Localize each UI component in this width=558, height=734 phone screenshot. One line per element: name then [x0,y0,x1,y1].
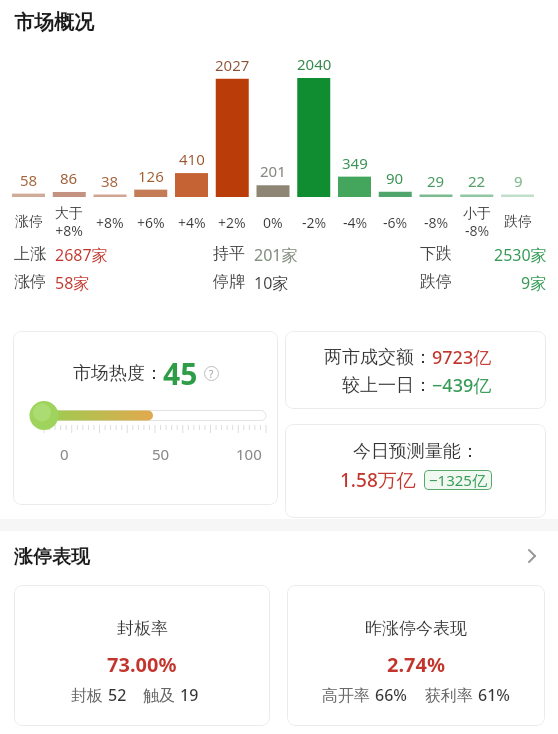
staticText: 下跌 [420,244,452,264]
staticText: +6% [137,213,165,232]
staticText: 封板率 [117,618,168,639]
staticText: 持平 [213,244,245,264]
staticText: 今日预测量能： [353,440,479,463]
staticText: 349 [342,153,368,173]
button[interactable]: 市场热度： [13,331,278,505]
staticText: 2530家 [494,244,547,266]
staticText: 58 [20,170,38,190]
staticText: 市场热度： [73,362,163,385]
staticText: 201家 [254,244,298,266]
staticText: -2% [302,213,327,232]
staticText: 高开率 [322,684,375,706]
staticText: −439亿 [432,373,492,397]
staticText: 2027 [215,55,250,75]
staticText: 两市成交额： [324,346,432,369]
staticText: 昨涨停今表现 [365,618,467,639]
staticText: 较上一日： [342,374,432,397]
staticText: 126 [138,166,164,186]
staticText: 50 [152,444,170,464]
staticText: 跌停 [420,272,452,292]
staticText: 410 [179,149,205,169]
staticText: 涨停 [14,272,46,292]
staticText: 100 [236,444,262,464]
staticText: 29 [427,171,445,191]
staticText: 2040 [297,54,332,74]
staticText: 上涨 [14,244,46,264]
staticText: 73.00% [107,651,177,675]
button[interactable]: 封板率 [14,585,270,726]
staticText: 22 [468,171,486,191]
staticText: 2687家 [55,244,108,266]
staticText: 86 [60,168,78,188]
staticText: 跌停 [504,213,532,231]
staticText: 小于 -8% [463,205,491,239]
staticText: 9 [514,171,523,191]
staticText: 市场概况 [14,10,94,35]
staticText: -4% [343,213,368,232]
staticText: 10家 [254,272,289,294]
staticText: 90 [386,168,404,188]
staticText: 1.58万亿 [340,467,416,493]
button[interactable] [524,548,540,564]
staticText: 0 [60,444,69,464]
staticText: 获利率 [425,684,478,706]
staticText: 0% [263,213,283,232]
staticText: 45 [163,353,198,393]
staticText: 涨停表现 [14,545,90,569]
staticText: +2% [218,213,246,232]
staticText: ? [209,367,214,381]
staticText: 19 [180,684,199,706]
staticText: 大于 +8% [55,205,83,239]
button[interactable]: 昨涨停今表现 [287,585,545,726]
staticText: 58家 [55,272,90,294]
staticText: 52 [108,684,127,706]
staticText: 封板 [71,684,108,706]
button[interactable]: 今日预测量能： [285,424,546,518]
staticText: 66% [375,684,407,706]
staticText: 61% [478,684,510,706]
staticText: -6% [383,213,408,232]
staticText: +8% [96,213,124,232]
staticText: +4% [178,213,206,232]
staticText: 触及 [143,684,180,706]
staticText: -8% [424,213,449,232]
staticText: 涨停 [15,213,43,231]
staticText: 停牌 [213,272,245,292]
staticText: −1325亿 [429,470,487,490]
staticText: 9家 [521,272,547,294]
staticText: 9723亿 [432,345,492,369]
staticText: 2.74% [387,651,445,675]
button[interactable]: 两市成交额： [285,331,546,409]
staticText: 201 [260,161,286,181]
staticText: 38 [101,171,119,191]
